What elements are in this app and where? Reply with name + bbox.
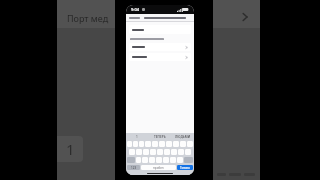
staticText: 123 [131,166,137,170]
button[interactable]: Готово [177,165,193,170]
button[interactable] [187,141,193,147]
button[interactable] [163,157,169,163]
staticText: 1 [136,135,138,139]
button[interactable] [152,141,158,147]
button[interactable] [170,157,176,163]
other: Next [240,12,250,22]
button[interactable] [150,149,156,155]
button[interactable] [173,141,179,147]
button[interactable]: 123 [127,165,140,170]
button[interactable] [185,149,191,155]
staticText: ЛЮДЬМИ [175,135,191,139]
button[interactable]: пробел [141,165,176,170]
button[interactable] [142,157,148,163]
button[interactable] [129,149,135,155]
button[interactable] [145,141,151,147]
button[interactable]: Previous item [57,0,115,180]
button[interactable] [129,43,191,51]
button[interactable] [178,149,184,155]
button[interactable] [129,25,191,34]
button[interactable] [177,157,183,163]
button[interactable] [171,149,177,155]
button[interactable] [164,149,170,155]
button[interactable]: Back [129,17,140,19]
button[interactable] [159,141,165,147]
staticText: 1 [66,139,75,159]
button[interactable] [129,53,191,61]
button[interactable] [157,149,163,155]
button[interactable] [143,149,149,155]
button[interactable] [127,141,132,147]
button[interactable] [166,141,172,147]
staticText: пробел [153,166,164,170]
button[interactable] [136,149,142,155]
staticText: 9:04 [131,7,139,12]
staticText: Готово [180,166,190,170]
staticText: ТЕПЕРЬ [154,135,166,139]
button[interactable]: ТЕПЕРЬ [148,133,171,140]
button[interactable] [139,141,144,147]
button[interactable]: 1 [126,133,148,140]
button[interactable]: ЛЮДЬМИ [171,133,194,140]
staticText: Порт мед [67,12,109,24]
button[interactable] [136,157,141,163]
button[interactable] [149,157,155,163]
button[interactable]: Next item [213,0,260,180]
button[interactable] [133,141,138,147]
button[interactable] [156,157,162,163]
button[interactable] [180,141,186,147]
